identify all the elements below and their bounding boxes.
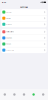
button[interactable]: Display [1, 15, 47, 21]
button[interactable]: Privacy [1, 21, 47, 27]
button[interactable]: Focus [1, 41, 47, 47]
button[interactable]: Tab 3 [19, 89, 29, 100]
button[interactable]: General [1, 9, 47, 15]
staticText: Privacy [6, 23, 12, 25]
staticText: Sounds [6, 37, 12, 39]
staticText: 9:41 [2, 1, 6, 4]
button[interactable]: Tab 2 [10, 89, 19, 100]
staticText: Settings [20, 6, 28, 8]
button[interactable]: Sounds [1, 35, 47, 41]
staticText: Notifications [6, 31, 14, 33]
staticText: General [6, 11, 11, 13]
button[interactable]: Tab 1 [0, 89, 10, 100]
staticText: Focus [6, 43, 11, 45]
staticText: Display [6, 17, 11, 19]
button[interactable]: Tab 5 [38, 89, 48, 100]
button[interactable]: Screen Time [1, 47, 47, 53]
button[interactable]: Notifications [1, 29, 47, 35]
staticText: Screen Time [6, 49, 14, 51]
button[interactable]: Tab 4 [29, 89, 38, 100]
